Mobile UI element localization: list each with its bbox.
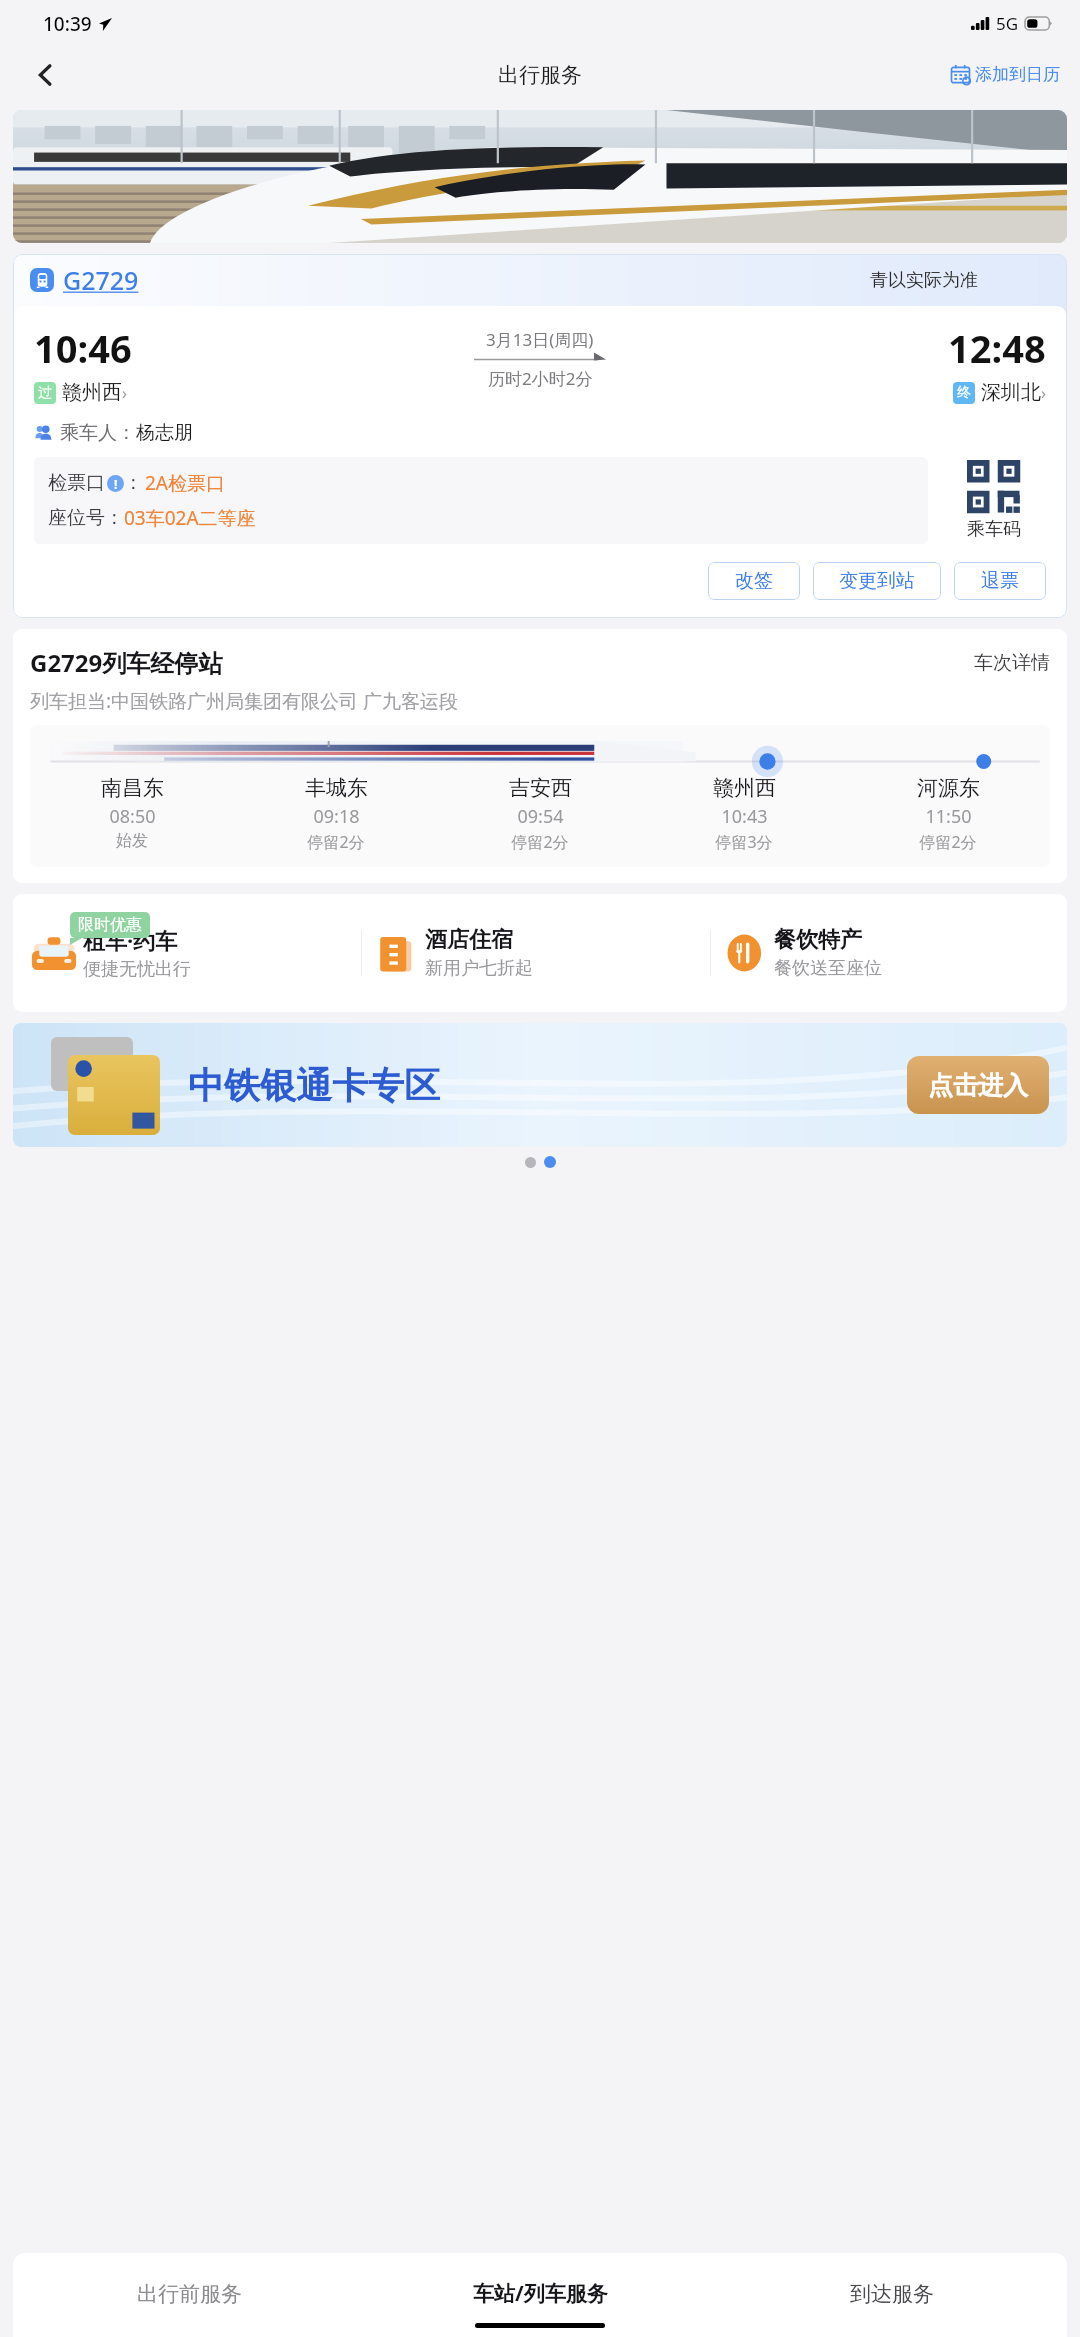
- staticText: 11:50: [925, 804, 972, 829]
- staticText: 停留2分: [919, 831, 977, 853]
- staticText: 中铁银通卡专区: [188, 1063, 440, 1108]
- staticText: 乘车码: [967, 518, 1021, 541]
- staticText: 改签: [735, 569, 773, 593]
- button[interactable]: 添加到日历: [945, 56, 1066, 93]
- staticText: 停留2分: [511, 831, 569, 853]
- button[interactable]: [13, 110, 1067, 243]
- staticText: 变更到站: [839, 569, 915, 593]
- staticText: 便捷无忧出行: [83, 958, 191, 981]
- button[interactable]: 南昌东: [30, 775, 234, 851]
- staticText: 车次详情: [974, 651, 1050, 675]
- staticText: ›: [122, 382, 127, 404]
- staticText: 杨志朋: [136, 421, 193, 445]
- staticText: 河源东: [917, 775, 980, 801]
- staticText: 出行前服务: [137, 2281, 242, 2307]
- button[interactable]: 丰城东: [234, 775, 438, 853]
- staticText: 5G: [996, 12, 1019, 35]
- staticText: ›: [1041, 382, 1046, 404]
- staticText: ：: [124, 471, 143, 495]
- staticText: 10:39: [43, 11, 92, 37]
- staticText: 始发: [116, 831, 148, 851]
- staticText: 车站/列车服务: [473, 2279, 608, 2308]
- button[interactable]: 租车·约车: [13, 894, 361, 1012]
- button[interactable]: G2729: [30, 263, 139, 297]
- staticText: 09:18: [313, 804, 360, 829]
- staticText: 租车·约车: [83, 925, 178, 955]
- button[interactable]: 乘车码: [946, 460, 1042, 541]
- button[interactable]: 出行前服务: [13, 2281, 365, 2307]
- staticText: 酒店住宿: [425, 926, 513, 954]
- button[interactable]: 改签: [708, 562, 800, 600]
- staticText: 新用户七折起: [425, 957, 533, 980]
- button[interactable]: 赣州西: [642, 775, 846, 853]
- staticText: 10:43: [721, 804, 768, 829]
- staticText: G2729: [63, 263, 139, 297]
- staticText: 停留2分: [307, 831, 365, 853]
- button[interactable]: Back: [22, 51, 70, 99]
- button[interactable]: 点击进入: [907, 1056, 1049, 1114]
- staticText: 终: [957, 384, 971, 402]
- staticText: 餐饮送至座位: [774, 957, 882, 980]
- staticText: 停留3分: [715, 831, 773, 853]
- button[interactable]: 到达服务: [716, 2281, 1067, 2307]
- button[interactable]: 退票: [954, 562, 1046, 600]
- staticText: 深圳北: [981, 380, 1041, 405]
- button[interactable]: 酒店住宿: [362, 894, 710, 1012]
- staticText: 座位号：: [48, 506, 124, 530]
- staticText: 12:48: [948, 322, 1046, 374]
- button[interactable]: 中铁银通卡专区: [13, 1023, 1067, 1147]
- staticText: 出行服务: [498, 62, 582, 88]
- button[interactable]: 吉安西: [438, 775, 642, 853]
- staticText: 南昌东: [101, 775, 164, 801]
- staticText: 赣州西: [62, 380, 122, 405]
- staticText: 餐饮特产: [774, 926, 862, 954]
- staticText: G2729列车经停站: [30, 646, 223, 679]
- button[interactable]: 乘车人：: [34, 421, 193, 445]
- staticText: 03车02A二等座: [124, 505, 256, 531]
- button[interactable]: 车次详情: [974, 651, 1050, 675]
- staticText: 丰城东: [305, 775, 368, 801]
- staticText: 过: [38, 384, 52, 402]
- staticText: 历时2小时2分: [488, 367, 593, 390]
- staticText: 赣州西: [713, 775, 776, 801]
- button[interactable]: 变更到站: [813, 562, 941, 600]
- staticText: 青以实际为准: [870, 269, 978, 292]
- staticText: 09:54: [517, 804, 564, 829]
- staticText: 08:50: [109, 804, 156, 829]
- staticText: 2A检票口: [145, 470, 226, 496]
- staticText: 乘车人：: [60, 421, 136, 445]
- staticText: 退票: [981, 569, 1019, 593]
- staticText: 3月13日(周四): [486, 328, 594, 351]
- staticText: 吉安西: [509, 775, 572, 801]
- button[interactable]: 餐饮特产: [711, 894, 1059, 1012]
- staticText: 限时优惠: [78, 915, 142, 935]
- button[interactable]: 车站/列车服务: [365, 2279, 716, 2308]
- staticText: !: [114, 476, 118, 492]
- button[interactable]: 河源东: [846, 775, 1050, 853]
- staticText: 到达服务: [850, 2281, 934, 2307]
- staticText: 检票口: [48, 471, 105, 495]
- staticText: 10:46: [34, 322, 132, 374]
- staticText: 点击进入: [928, 1070, 1028, 1101]
- staticText: 列车担当:中国铁路广州局集团有限公司 广九客运段: [30, 688, 459, 714]
- staticText: 添加到日历: [975, 64, 1060, 85]
